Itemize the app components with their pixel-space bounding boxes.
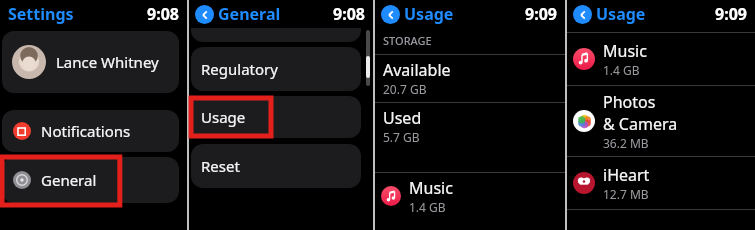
button[interactable]: Notifications [2,110,179,152]
staticText: 20.7 GB [383,81,427,97]
staticText: Music [603,40,647,62]
button[interactable]: Back [381,5,400,24]
staticText: Reset [201,156,240,176]
staticText: Settings [8,3,74,25]
button[interactable]: Used [383,103,565,150]
staticText: 1.4 GB [603,62,640,78]
staticText: & Camera [603,113,678,135]
button[interactable]: Music [567,33,755,85]
staticText: 1.4 GB [409,199,446,215]
staticText: Usage [201,107,246,127]
button[interactable]: Reset [191,144,361,188]
staticText: Usage [596,3,646,25]
staticText: 9:09 [525,3,557,25]
staticText: Lance Whitney [56,52,159,72]
button[interactable]: Music [375,173,565,215]
staticText: 9:08 [147,3,179,25]
staticText: Available [383,59,451,81]
staticText: 9:08 [333,3,365,25]
button[interactable]: Back [195,5,214,24]
button[interactable]: Regulatory [191,47,361,91]
staticText: Usage [404,3,454,25]
staticText: 5.7 GB [383,129,420,145]
staticText: Music [409,177,453,199]
staticText: 12.7 MB [603,186,649,202]
button[interactable]: General [2,157,179,203]
button[interactable]: Usage [191,96,361,138]
staticText: Notifications [41,121,131,141]
button[interactable]: iHeart [567,157,755,209]
button[interactable]: Photos [567,86,755,156]
button[interactable]: Lance Whitney [2,31,179,93]
staticText: iHeart [603,164,650,186]
staticText: 36.2 MB [603,135,649,151]
staticText: Photos [603,91,656,113]
staticText: 9:09 [715,3,747,25]
staticText: General [41,170,97,190]
staticText: Regulatory [201,59,278,79]
button[interactable]: Back [573,5,592,24]
staticText: Used [383,107,422,129]
staticText: STORAGE [383,33,432,48]
staticText: General [218,3,281,25]
button[interactable]: Available [383,55,565,102]
